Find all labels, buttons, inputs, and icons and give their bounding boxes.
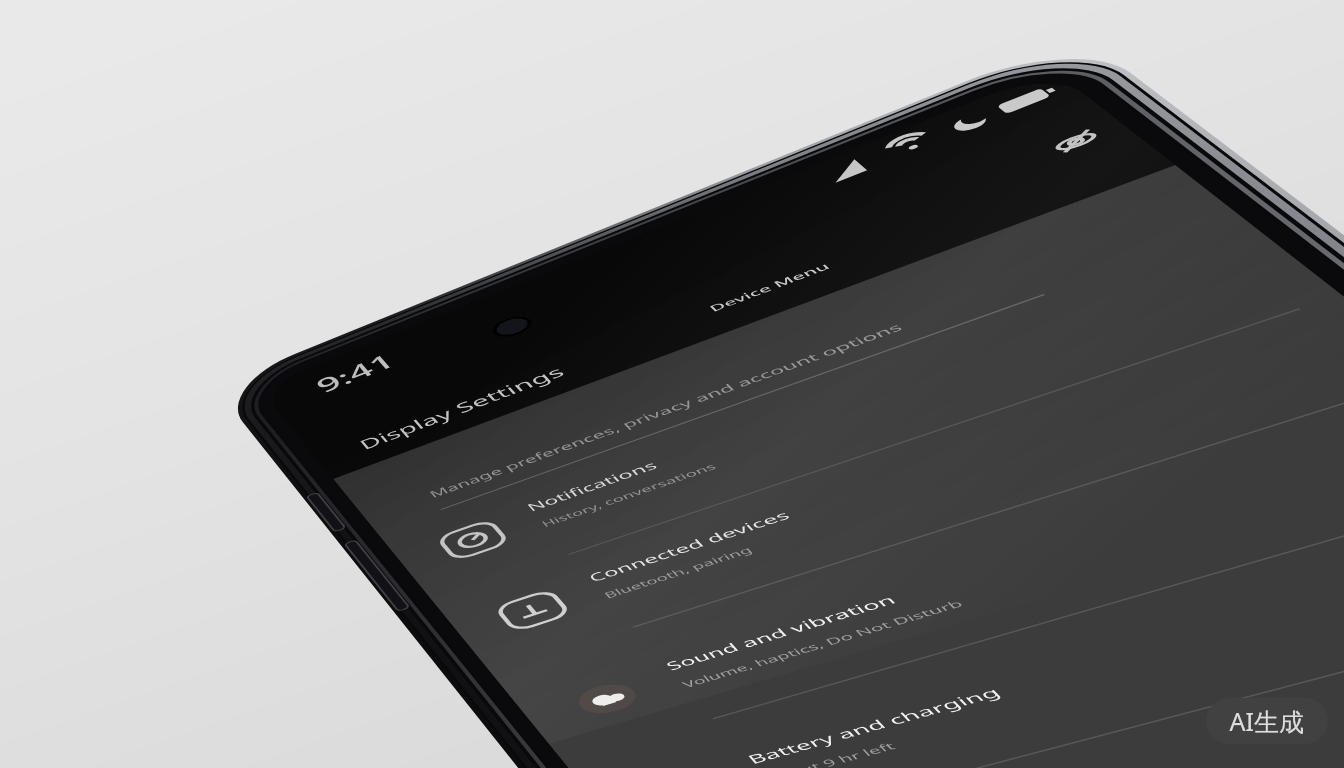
button[interactable]: Status bar clock 9:41	[232, 330, 452, 420]
button[interactable]: Display Settings	[320, 350, 650, 470]
button[interactable]: AI generated badge	[1206, 690, 1328, 740]
button[interactable]: Status icons	[820, 60, 1120, 180]
button[interactable]: Sound and vibration	[545, 625, 1275, 745]
button[interactable]: Hide preview	[1010, 100, 1130, 190]
button[interactable]: Connected devices - Bluetooth, pairing	[470, 545, 1170, 665]
button[interactable]: Device Menu	[640, 240, 900, 330]
button[interactable]: Manage preferences, privacy and account …	[370, 440, 1010, 570]
button[interactable]: Notifications - History, conversations	[400, 470, 1100, 590]
button[interactable]: Battery and charging	[620, 700, 1344, 768]
